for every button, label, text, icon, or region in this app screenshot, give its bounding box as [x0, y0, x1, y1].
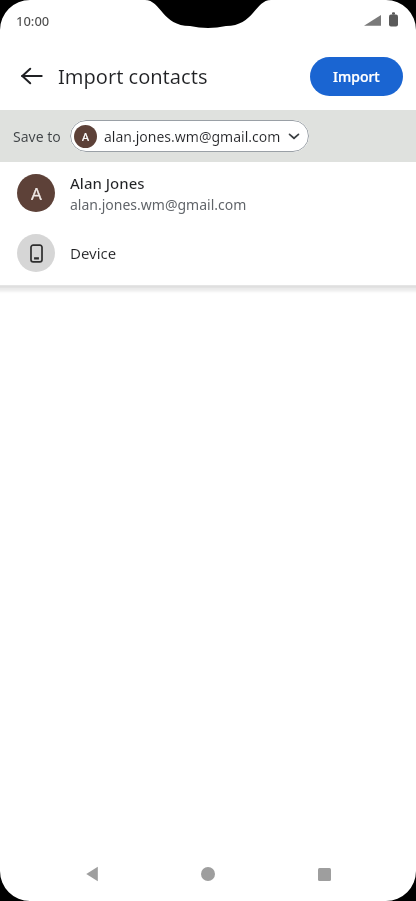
button[interactable]: Home	[185, 851, 231, 897]
staticText: 10:00	[16, 12, 50, 30]
staticText: alan.jones.wm@gmail.com	[104, 127, 281, 146]
staticText: Import	[333, 67, 380, 86]
staticText: Save to	[13, 127, 61, 146]
button[interactable]: Back	[70, 851, 116, 897]
button[interactable]: A	[0, 162, 416, 224]
button[interactable]: Back	[8, 52, 56, 100]
button[interactable]: Import	[310, 57, 403, 96]
staticText: A	[82, 129, 90, 144]
staticText: A	[31, 182, 42, 205]
staticText: Device	[70, 243, 117, 263]
staticText: Alan Jones	[70, 173, 145, 193]
button[interactable]: Device	[0, 224, 416, 282]
button[interactable]: A	[70, 120, 309, 152]
staticText: Import contacts	[58, 63, 208, 90]
button[interactable]: Recent apps	[301, 851, 347, 897]
staticText: alan.jones.wm@gmail.com	[70, 195, 247, 214]
